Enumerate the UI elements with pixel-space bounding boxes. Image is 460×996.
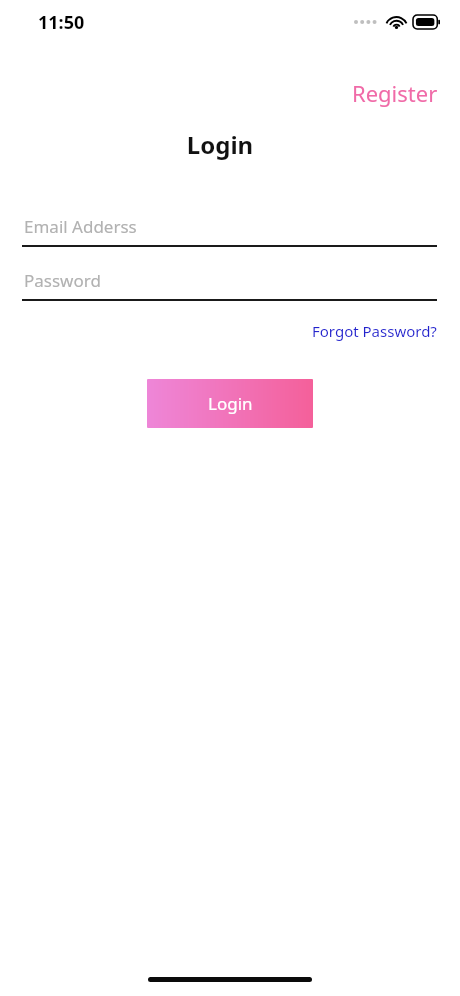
staticText: Email Adderss bbox=[24, 215, 137, 238]
button[interactable]: Email Adderss bbox=[0, 207, 460, 247]
staticText: 11:50 bbox=[38, 10, 85, 35]
button[interactable]: Login bbox=[147, 379, 313, 428]
staticText: Login bbox=[0, 128, 440, 161]
button[interactable]: Forgot Password? bbox=[312, 319, 460, 343]
button[interactable]: Password bbox=[0, 261, 460, 301]
staticText: Login bbox=[208, 392, 253, 415]
other: Home indicator bbox=[148, 977, 312, 982]
button[interactable]: Register bbox=[330, 74, 460, 112]
staticText: Password bbox=[24, 269, 101, 292]
